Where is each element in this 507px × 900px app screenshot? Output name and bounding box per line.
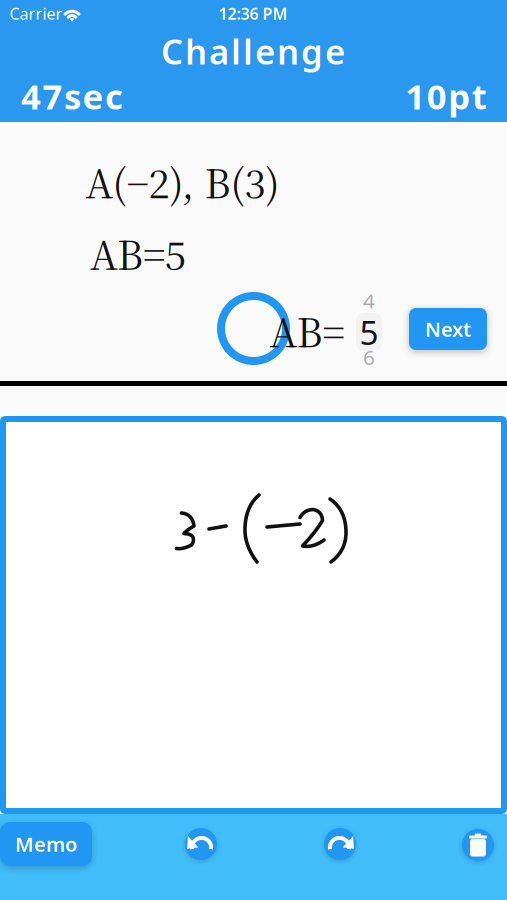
staticText: 10pt [405,72,487,120]
button[interactable]: Next [409,308,487,350]
button[interactable]: Undo [185,828,217,860]
staticText: AB=5 [90,225,186,281]
button[interactable]: 4 [354,267,384,391]
staticText: Memo [15,830,77,858]
staticText: 12:36 PM [218,3,287,24]
staticText: Carrier [9,3,62,24]
staticText: Next [425,315,471,343]
staticText: Challenge [161,27,345,75]
button[interactable]: Clear [462,829,494,861]
staticText: AB= [269,303,344,358]
staticText: 4 [363,286,375,314]
staticText: A(−2), B(3) [85,154,279,209]
staticText: 5 [359,309,378,355]
staticText: 6 [363,343,375,371]
staticText: 47sec [21,72,123,120]
button[interactable]: Memo [0,822,92,866]
button[interactable]: Redo [324,828,356,860]
